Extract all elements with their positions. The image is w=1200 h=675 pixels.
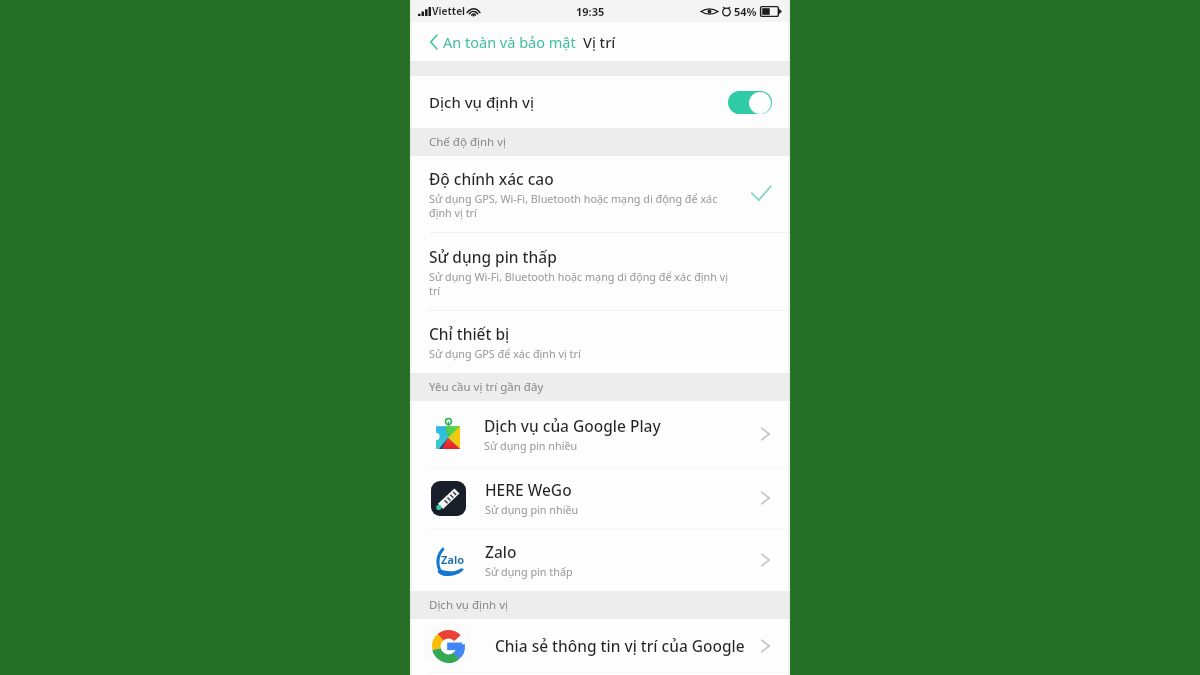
staticText: Sử dụng pin nhiều bbox=[484, 438, 578, 453]
staticText: Viettel bbox=[432, 4, 466, 18]
other: Selected bbox=[750, 183, 772, 205]
button[interactable]: Sử dụng pin thấp bbox=[410, 233, 790, 310]
staticText: 54% bbox=[734, 4, 757, 19]
staticText: Vị trí bbox=[583, 32, 616, 52]
button[interactable]: Back bbox=[424, 33, 442, 51]
staticText: Zalo bbox=[441, 552, 465, 567]
staticText: An toàn và bảo mật bbox=[443, 32, 576, 52]
button[interactable]: Độ chính xác cao bbox=[410, 156, 790, 232]
staticText: Sử dụng GPS, Wi-Fi, Bluetooth hoặc mạng … bbox=[429, 191, 737, 220]
other: Zalo bbox=[757, 552, 773, 568]
button[interactable]: Dịch vụ định vị bbox=[410, 76, 790, 128]
staticText: Dịch vụ định vị bbox=[429, 597, 508, 613]
button[interactable]: Chia sẻ thông tin vị trí của Google bbox=[410, 619, 790, 672]
staticText: Sử dụng GPS để xác định vị trí bbox=[429, 346, 581, 361]
staticText: Chế độ định vị bbox=[429, 134, 506, 150]
staticText: Chỉ thiết bị bbox=[429, 323, 510, 344]
staticText: Sử dụng pin thấp bbox=[429, 246, 557, 267]
staticText: Zalo bbox=[485, 541, 517, 562]
staticText: Chia sẻ thông tin vị trí của Google bbox=[495, 635, 745, 656]
button[interactable]: Dịch vụ của Google Play bbox=[410, 401, 790, 467]
staticText: HERE WeGo bbox=[485, 479, 572, 500]
button[interactable]: HERE WeGo bbox=[410, 468, 790, 528]
button[interactable]: Location services switch, on bbox=[728, 91, 772, 114]
staticText: Sử dụng Wi-Fi, Bluetooth hoặc mạng di độ… bbox=[429, 269, 737, 298]
other: HERE WeGo bbox=[757, 490, 773, 506]
staticText: Dịch vụ của Google Play bbox=[484, 415, 661, 436]
staticText: Yêu cầu vị trí gần đây bbox=[429, 379, 544, 395]
staticText: Sử dụng pin nhiều bbox=[485, 502, 579, 517]
other: Chia sẻ thông tin vị trí của Google bbox=[757, 638, 773, 654]
button[interactable]: Chỉ thiết bị bbox=[410, 311, 790, 373]
staticText: Dịch vụ định vị bbox=[429, 92, 534, 112]
staticText: 19:35 bbox=[576, 4, 605, 19]
staticText: Độ chính xác cao bbox=[429, 168, 554, 189]
other: Dịch vụ của Google Play bbox=[757, 426, 773, 442]
staticText: Sử dụng pin thấp bbox=[485, 564, 573, 579]
button[interactable]: Zalo bbox=[410, 529, 790, 591]
